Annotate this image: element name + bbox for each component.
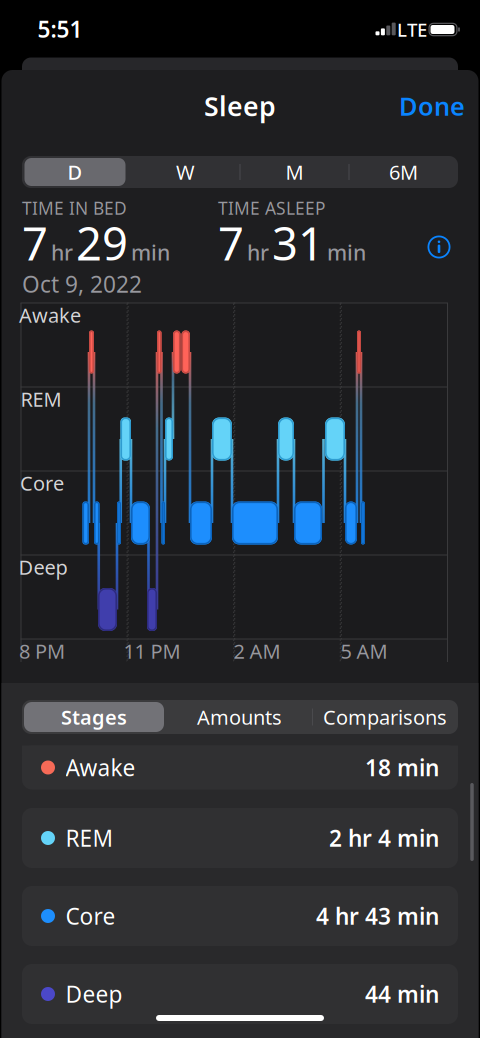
button[interactable]: M — [244, 158, 344, 186]
staticText: 5 AM — [340, 638, 387, 664]
staticText: 11 PM — [123, 638, 180, 664]
staticText: hr — [51, 238, 73, 266]
staticText: 2 hr 4 min — [329, 823, 439, 853]
button[interactable]: Amounts — [169, 702, 309, 732]
staticText: 44 min — [365, 979, 439, 1009]
staticText: Deep — [65, 979, 122, 1009]
button[interactable]: 6M — [353, 158, 453, 186]
staticText: 2 AM — [233, 638, 280, 664]
staticText: LTE — [397, 17, 427, 42]
staticText: TIME ASLEEP — [218, 196, 325, 219]
staticText: 4 hr 43 min — [316, 901, 439, 931]
staticText: D — [67, 159, 82, 185]
staticText: Core — [65, 901, 115, 931]
button[interactable]: Comparisons — [314, 702, 456, 732]
staticText: REM — [65, 823, 113, 853]
button[interactable]: Stages — [24, 702, 164, 732]
staticText: 7 — [218, 213, 244, 273]
staticText: Awake — [65, 752, 135, 782]
staticText: 5:51 — [37, 14, 82, 44]
staticText: Comparisons — [323, 704, 447, 730]
staticText: 29 — [76, 213, 128, 273]
staticText: Amounts — [197, 704, 282, 730]
staticText: 31 — [272, 213, 324, 273]
staticText: 7 — [22, 213, 48, 273]
staticText: TIME IN BED — [22, 196, 127, 219]
staticText: 8 PM — [19, 638, 65, 664]
staticText: 18 min — [365, 752, 439, 782]
staticText: Sleep — [204, 88, 276, 124]
staticText: Stages — [61, 704, 127, 730]
staticText: W — [176, 159, 195, 185]
button[interactable]: Done — [399, 89, 465, 123]
staticText: hr — [247, 238, 269, 266]
staticText: REM — [20, 386, 61, 412]
staticText: Core — [20, 470, 64, 496]
staticText: Deep — [18, 554, 67, 580]
button[interactable]: More info — [427, 235, 450, 258]
button[interactable]: W — [135, 158, 235, 186]
staticText: M — [285, 159, 303, 185]
button[interactable]: D — [24, 158, 125, 186]
staticText: Oct 9, 2022 — [22, 269, 142, 299]
staticText: min — [327, 238, 366, 266]
staticText: Awake — [19, 302, 81, 328]
staticText: min — [131, 238, 170, 266]
staticText: Done — [399, 89, 465, 123]
staticText: 6M — [389, 159, 418, 185]
